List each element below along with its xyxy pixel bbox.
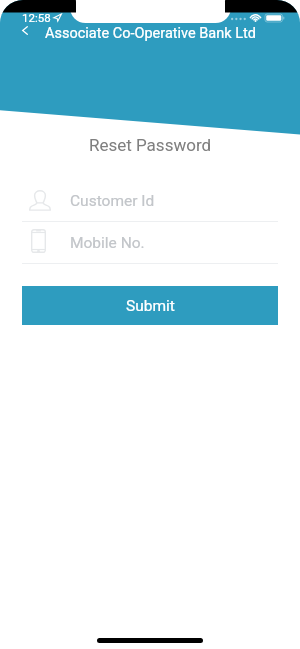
button[interactable]: Submit [22,286,278,325]
staticText: Submit [126,297,175,315]
staticText: 12:58 [22,11,51,24]
staticText: Customer Id [70,192,155,210]
staticText: Associate Co-Operative Bank Ltd [45,25,256,42]
staticText: Mobile No. [70,234,145,252]
staticText: Reset Password [0,135,300,155]
button[interactable]: Customer Id [22,186,278,222]
button[interactable]: Mobile No. [22,228,278,264]
button[interactable]: Back [13,18,37,42]
